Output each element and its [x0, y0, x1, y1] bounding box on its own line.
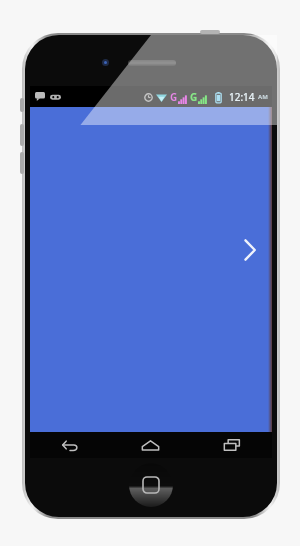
button[interactable]: Recent apps — [191, 432, 272, 458]
staticText: G — [170, 90, 178, 104]
staticText: AM — [258, 93, 268, 101]
button[interactable]: Back — [30, 432, 110, 458]
staticText: G — [190, 90, 198, 104]
button[interactable]: Next — [236, 236, 264, 264]
staticText: 12:14 — [229, 90, 255, 104]
button[interactable]: Home button — [129, 463, 173, 507]
button[interactable]: Home — [110, 432, 191, 458]
